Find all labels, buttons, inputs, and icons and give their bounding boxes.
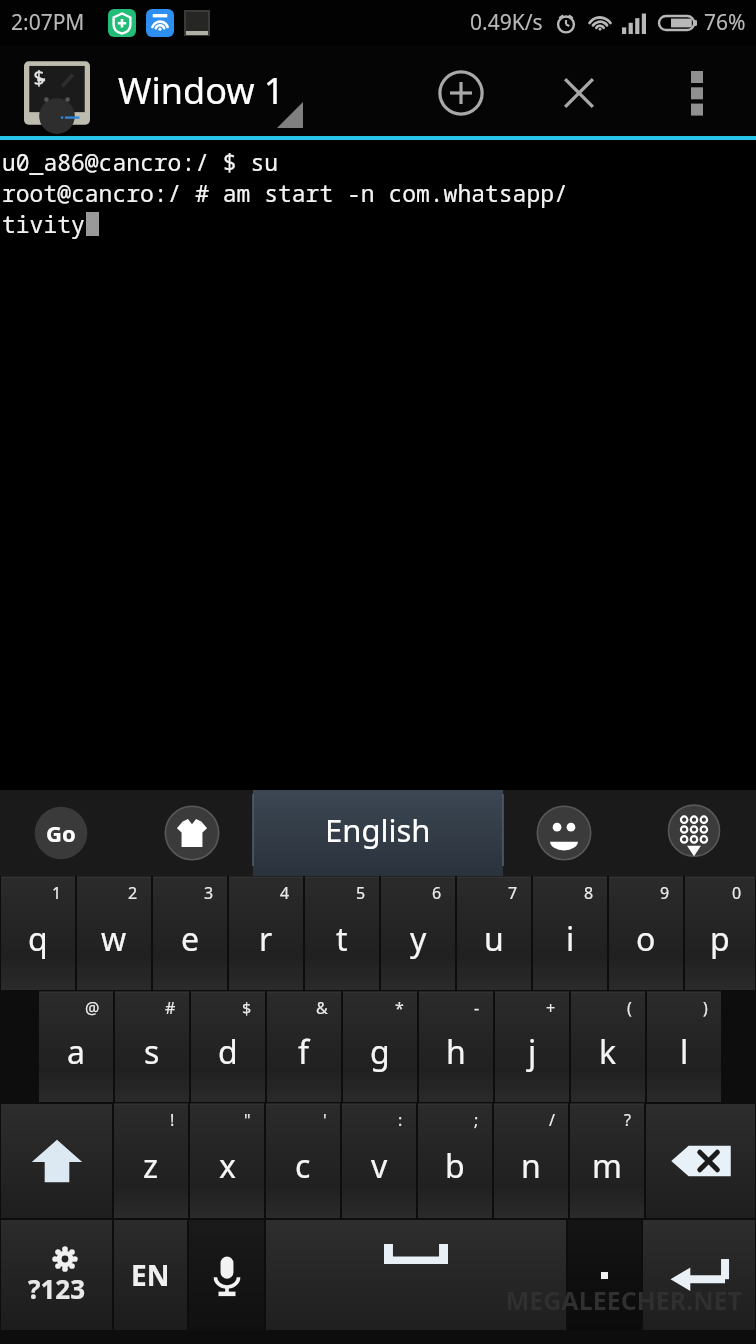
- button[interactable]: Voice input: [189, 1220, 264, 1330]
- staticText: 5: [356, 882, 366, 904]
- staticText: ;: [474, 1109, 479, 1131]
- button[interactable]: 4: [229, 877, 303, 990]
- staticText: +: [546, 997, 556, 1019]
- staticText: n: [521, 1144, 541, 1188]
- button[interactable]: Keyboard layout: [665, 804, 723, 862]
- staticText: &: [316, 997, 328, 1019]
- button[interactable]: ": [190, 1104, 264, 1218]
- button[interactable]: ): [647, 992, 721, 1102]
- staticText: 4: [280, 882, 290, 904]
- staticText: i: [566, 917, 575, 961]
- staticText: English: [325, 809, 431, 851]
- staticText: root@cancro:/ # am start -n com.whatsapp…: [2, 177, 756, 208]
- button[interactable]: 8: [533, 877, 607, 990]
- staticText: 0.49K/s: [470, 8, 543, 37]
- staticText: (: [627, 997, 632, 1019]
- button[interactable]: 9: [609, 877, 683, 990]
- staticText: v: [371, 1144, 388, 1188]
- button[interactable]: &: [267, 992, 341, 1102]
- button[interactable]: Go keyboard menu: [33, 805, 89, 861]
- staticText: 0: [732, 882, 742, 904]
- button[interactable]: #: [115, 992, 189, 1102]
- staticText: l: [680, 1030, 689, 1074]
- button[interactable]: Theme: [163, 804, 221, 862]
- staticText: 8: [584, 882, 594, 904]
- staticText: p: [710, 917, 730, 961]
- staticText: /: [549, 1109, 555, 1131]
- button[interactable]: 0: [685, 877, 755, 990]
- button[interactable]: Window menu: [277, 102, 303, 128]
- staticText: 1: [52, 882, 62, 904]
- staticText: $: [242, 997, 252, 1019]
- staticText: t: [336, 917, 348, 961]
- button[interactable]: Emoji: [535, 804, 593, 862]
- staticText: Go: [46, 818, 76, 848]
- staticText: c: [295, 1144, 311, 1188]
- button[interactable]: Shift: [1, 1104, 112, 1218]
- staticText: -: [474, 997, 480, 1019]
- staticText: !: [170, 1109, 175, 1131]
- button[interactable]: ;: [418, 1104, 492, 1218]
- staticText: z: [143, 1144, 159, 1188]
- button[interactable]: ?123: [1, 1220, 112, 1330]
- button[interactable]: (: [571, 992, 645, 1102]
- button[interactable]: @: [39, 992, 113, 1102]
- staticText: @: [85, 997, 100, 1019]
- button[interactable]: Backspace: [646, 1104, 755, 1218]
- button[interactable]: ?: [570, 1104, 644, 1218]
- staticText: #: [165, 997, 176, 1019]
- staticText: b: [445, 1144, 465, 1188]
- button[interactable]: /: [494, 1104, 568, 1218]
- staticText: f: [298, 1030, 310, 1074]
- staticText: 2: [128, 882, 138, 904]
- staticText: 76%: [704, 8, 746, 37]
- staticText: MEGALEECHER.NET: [505, 1283, 742, 1317]
- button[interactable]: 1: [1, 877, 75, 990]
- button[interactable]: EN: [114, 1220, 187, 1330]
- button[interactable]: !: [114, 1104, 188, 1218]
- staticText: g: [370, 1030, 390, 1074]
- button[interactable]: +: [495, 992, 569, 1102]
- staticText: tivity: [2, 208, 85, 239]
- staticText: :: [398, 1109, 403, 1131]
- staticText: m: [592, 1144, 622, 1188]
- staticText: k: [599, 1030, 617, 1074]
- button[interactable]: 5: [305, 877, 379, 990]
- button[interactable]: 6: [381, 877, 455, 990]
- staticText: e: [181, 917, 200, 961]
- staticText: 3: [204, 882, 214, 904]
- button[interactable]: Space: [266, 1220, 566, 1330]
- button[interactable]: 2: [77, 877, 151, 990]
- button[interactable]: *: [343, 992, 417, 1102]
- button[interactable]: -: [419, 992, 493, 1102]
- staticText: j: [528, 1030, 537, 1074]
- staticText: ?: [624, 1109, 631, 1131]
- staticText: 2:07PM: [11, 8, 85, 37]
- staticText: EN: [131, 1256, 170, 1294]
- staticText: y: [410, 917, 427, 961]
- staticText: ?123: [28, 1271, 86, 1306]
- staticText: *: [395, 997, 404, 1019]
- staticText: o: [636, 917, 656, 961]
- button[interactable]: Close window: [542, 56, 616, 130]
- staticText: ): [703, 997, 708, 1019]
- button[interactable]: :: [342, 1104, 416, 1218]
- button[interactable]: Enter: [643, 1220, 755, 1330]
- staticText: q: [28, 917, 48, 961]
- staticText: u: [484, 917, 504, 961]
- staticText: $: [33, 64, 45, 91]
- button[interactable]: New window: [424, 56, 498, 130]
- staticText: ": [244, 1109, 251, 1131]
- staticText: 7: [508, 882, 518, 904]
- button[interactable]: [568, 1220, 641, 1330]
- button[interactable]: More options: [660, 56, 734, 130]
- staticText: 9: [660, 882, 670, 904]
- staticText: x: [219, 1144, 236, 1188]
- button[interactable]: 7: [457, 877, 531, 990]
- staticText: r: [259, 917, 273, 961]
- button[interactable]: 3: [153, 877, 227, 990]
- button[interactable]: ': [266, 1104, 340, 1218]
- button[interactable]: $: [191, 992, 265, 1102]
- button[interactable]: English: [253, 790, 503, 876]
- staticText: a: [67, 1030, 85, 1074]
